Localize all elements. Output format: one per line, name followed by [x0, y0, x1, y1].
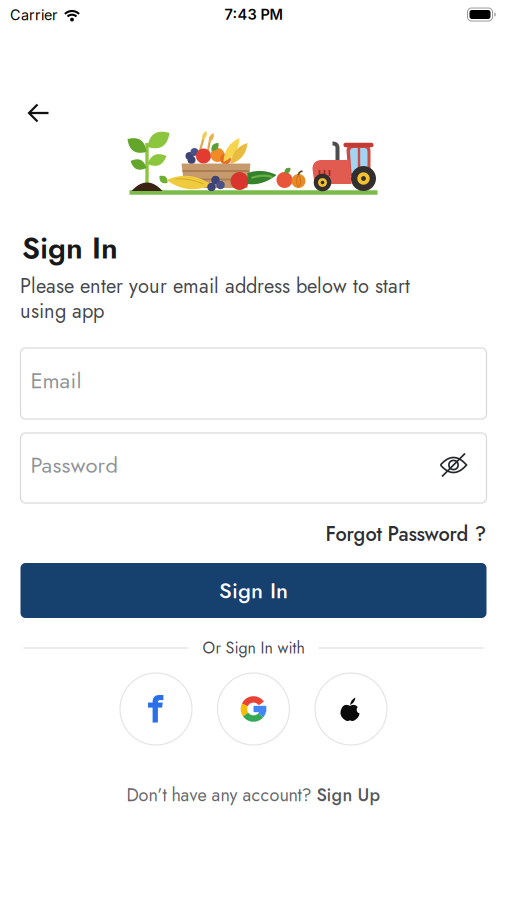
staticText: Or Sign In with	[202, 636, 304, 659]
button[interactable]: Sign in with Apple	[315, 673, 387, 745]
staticText: Email	[30, 365, 81, 396]
staticText: Sign In	[219, 575, 288, 606]
staticText: Carrier	[10, 6, 57, 24]
staticText: using app	[20, 296, 104, 325]
button[interactable]: Sign in with Google	[217, 673, 289, 745]
button[interactable]: Sign In	[20, 563, 486, 618]
staticText: Forgot Password ?	[325, 519, 486, 548]
button[interactable]: Forgot Password ?	[325, 519, 486, 548]
staticText: Sign Up	[316, 782, 380, 808]
staticText: 7:43 PM	[224, 6, 282, 23]
button[interactable]: Sign in with Facebook	[120, 673, 192, 745]
button[interactable]: Show password	[439, 453, 467, 477]
staticText: Password	[30, 449, 118, 481]
button[interactable]: Back	[16, 91, 60, 135]
button[interactable]: Sign Up	[126, 782, 380, 808]
staticText: Sign In	[22, 226, 118, 270]
staticText: Don’t have any account?	[126, 782, 311, 808]
staticText: Please enter your email address below to…	[20, 271, 410, 300]
